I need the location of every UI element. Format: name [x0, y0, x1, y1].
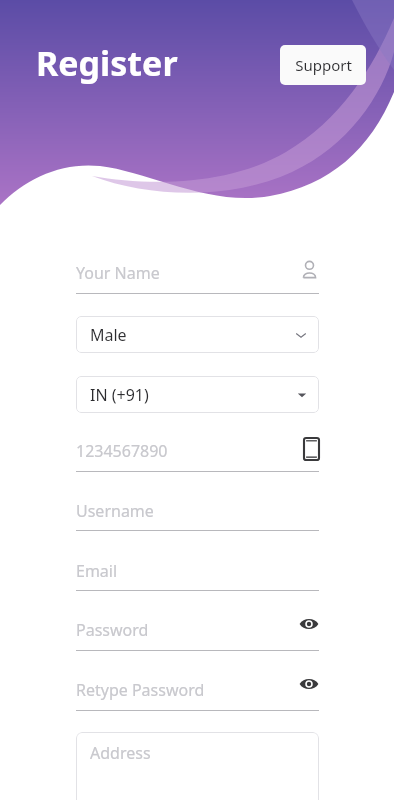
other: Show password — [299, 677, 319, 691]
button[interactable]: Retype Password — [76, 679, 319, 718]
button[interactable]: Address — [76, 732, 319, 800]
staticText: Register — [36, 40, 178, 86]
other: Phone number — [304, 438, 319, 460]
staticText: Username — [76, 500, 154, 522]
button[interactable]: Male — [76, 316, 319, 353]
staticText: Your Name — [76, 262, 160, 284]
button[interactable]: IN (+91) — [76, 376, 319, 413]
button[interactable]: Username — [76, 500, 319, 538]
staticText: Email — [76, 560, 118, 582]
button[interactable]: Your Name — [76, 262, 319, 301]
staticText: Password — [76, 619, 149, 641]
button[interactable]: Support — [280, 45, 366, 85]
button[interactable]: Password — [76, 619, 319, 658]
staticText: IN (+91) — [90, 384, 149, 406]
staticText: 1234567890 — [76, 440, 168, 462]
staticText: Retype Password — [76, 679, 205, 701]
staticText: Male — [90, 324, 127, 346]
staticText: Address — [90, 742, 151, 764]
button[interactable]: 1234567890 — [76, 440, 319, 479]
button[interactable]: Email — [76, 560, 319, 598]
other: Name — [300, 260, 319, 279]
other: Show password — [299, 617, 319, 631]
staticText: Support — [295, 55, 352, 75]
